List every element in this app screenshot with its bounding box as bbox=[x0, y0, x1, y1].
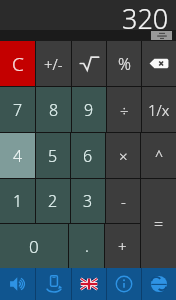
staticText: 0 bbox=[29, 235, 39, 258]
staticText: 9 bbox=[84, 99, 94, 121]
staticText: % bbox=[118, 53, 131, 75]
staticText: +/- bbox=[44, 54, 63, 74]
staticText: ^ bbox=[155, 146, 163, 165]
button[interactable]: . bbox=[69, 224, 104, 268]
button[interactable]: 3 bbox=[71, 179, 105, 223]
staticText: = bbox=[154, 213, 164, 235]
button[interactable]: 6 bbox=[71, 133, 105, 178]
button[interactable]: + bbox=[105, 224, 140, 268]
button[interactable]: = bbox=[141, 179, 176, 268]
button[interactable]: 1 bbox=[0, 179, 35, 223]
staticText: 1 bbox=[13, 190, 23, 212]
button[interactable]: 1/x bbox=[142, 87, 176, 132]
button[interactable]: 4 bbox=[0, 133, 35, 178]
button[interactable]: ÷ bbox=[107, 87, 141, 132]
staticText: + bbox=[118, 236, 127, 256]
button[interactable]: Menu bbox=[151, 31, 172, 40]
button[interactable]: 5 bbox=[36, 133, 70, 178]
staticText: 7 bbox=[13, 99, 23, 121]
staticText: C bbox=[12, 51, 24, 77]
button[interactable]: Sound bbox=[0, 268, 35, 300]
button[interactable]: × bbox=[106, 133, 140, 178]
staticText: - bbox=[121, 191, 126, 211]
button[interactable]: ^ bbox=[141, 133, 176, 178]
staticText: × bbox=[119, 146, 128, 166]
staticText: 6 bbox=[83, 145, 93, 167]
button[interactable]: Rotate screen bbox=[36, 268, 71, 300]
staticText: 320 bbox=[122, 0, 169, 30]
button[interactable]: Backspace bbox=[142, 41, 176, 86]
staticText: 3 bbox=[83, 190, 93, 212]
button[interactable]: 8 bbox=[36, 87, 71, 132]
button[interactable]: 2 bbox=[36, 179, 70, 223]
staticText: 2 bbox=[48, 190, 58, 212]
button[interactable]: Info bbox=[107, 268, 141, 300]
button[interactable]: 7 bbox=[0, 87, 35, 132]
button[interactable]: Language bbox=[72, 268, 106, 300]
button[interactable]: Web bbox=[142, 268, 176, 300]
button[interactable]: - bbox=[106, 179, 140, 223]
button[interactable]: 9 bbox=[72, 87, 106, 132]
button[interactable]: % bbox=[107, 41, 141, 86]
staticText: 1/x bbox=[148, 100, 170, 120]
staticText: 4 bbox=[13, 145, 23, 167]
staticText: 8 bbox=[49, 99, 59, 121]
button[interactable]: Square root bbox=[72, 41, 106, 86]
button[interactable]: C bbox=[0, 41, 35, 86]
button[interactable]: 0 bbox=[0, 224, 68, 268]
staticText: 5 bbox=[48, 145, 58, 167]
button[interactable]: +/- bbox=[36, 41, 71, 86]
staticText: ÷ bbox=[120, 100, 129, 120]
staticText: . bbox=[85, 235, 89, 257]
